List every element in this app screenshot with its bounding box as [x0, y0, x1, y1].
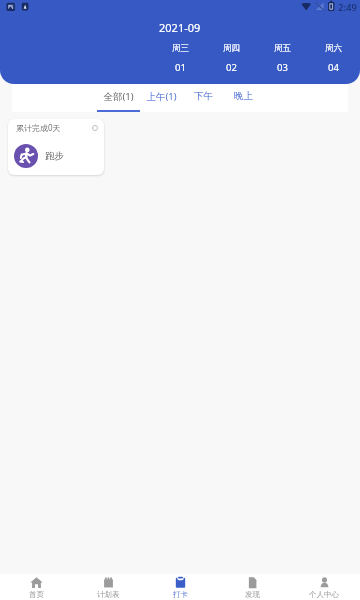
staticText: 周六 [325, 43, 342, 54]
button[interactable]: 周三 [155, 43, 206, 74]
staticText: 跑步 [45, 150, 64, 162]
staticText: 首页 [29, 590, 44, 599]
button[interactable]: Profile [288, 574, 360, 600]
staticText: 晚上 [234, 90, 253, 102]
staticText: 02 [226, 61, 237, 74]
button[interactable]: 晚上 [224, 84, 262, 112]
staticText: 04 [328, 61, 339, 74]
button[interactable]: Plan [72, 574, 144, 600]
staticText: 全部(1) [103, 90, 134, 103]
staticText: 个人中心 [309, 590, 339, 599]
staticText: 周五 [274, 43, 291, 54]
button[interactable]: 周四 [206, 43, 257, 74]
staticText: 打卡 [173, 590, 188, 599]
staticText: 03 [277, 61, 288, 74]
button[interactable]: 下午 [183, 84, 224, 112]
staticText: 2:49 [338, 1, 357, 14]
staticText: 发现 [245, 590, 260, 599]
button[interactable]: 上午(1) [140, 84, 183, 112]
button[interactable]: Home [0, 574, 72, 600]
staticText: 下午 [194, 90, 213, 102]
staticText: 累计完成0天 [16, 122, 61, 133]
staticText: 周四 [223, 43, 240, 54]
button[interactable]: Check in [144, 574, 216, 600]
button[interactable]: 累计完成0天 [8, 119, 104, 175]
button[interactable]: 全部(1) [97, 84, 140, 112]
button[interactable]: Discover [216, 574, 288, 600]
staticText: 周三 [172, 43, 189, 54]
button[interactable]: 周五 [257, 43, 308, 74]
staticText: 01 [175, 61, 186, 74]
button[interactable]: 周六 [308, 43, 359, 74]
staticText: 计划表 [97, 590, 120, 599]
staticText: 上午(1) [146, 90, 177, 103]
staticText: 2021-09 [159, 20, 201, 35]
